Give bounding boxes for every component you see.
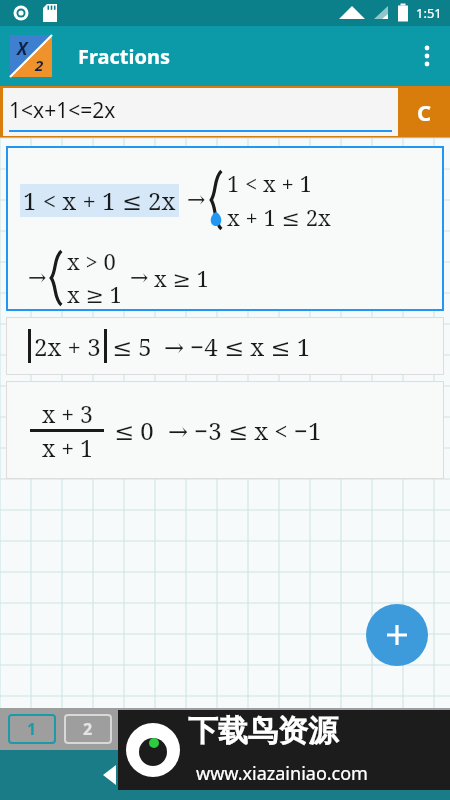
button[interactable]: 1<x+1<=2x [3, 88, 398, 136]
button[interactable]: Add [366, 604, 428, 666]
button[interactable]: 1 [8, 714, 56, 744]
button[interactable]: 3 [120, 714, 168, 744]
staticText: ≤ 0 [114, 414, 154, 447]
staticText: 1<x+1<=2x [9, 96, 116, 125]
staticText: 1 [27, 718, 37, 740]
staticText: 1 < x + 1 [227, 168, 312, 198]
staticText: → [187, 187, 206, 213]
staticText: 1 < x + 1 ≤ 2x [23, 184, 176, 217]
button[interactable]: 2 [64, 714, 112, 744]
staticText: Fractions [78, 43, 171, 70]
staticText: 1:51 [416, 4, 442, 22]
staticText: ≤ 5 [112, 330, 152, 363]
staticText: X [17, 37, 28, 60]
staticText: x + 1 [42, 432, 93, 463]
button[interactable]: 2x + 3 [6, 317, 444, 375]
staticText: 4 [195, 718, 205, 740]
staticText: 5 [251, 718, 261, 740]
staticText: 2 [83, 718, 93, 740]
staticText: 2 [35, 55, 44, 75]
staticText: x ≥ 1 [67, 279, 122, 309]
staticText: → −3 ≤ x < −1 [168, 414, 322, 447]
staticText: x + 3 [42, 398, 93, 429]
button[interactable]: 4 [176, 714, 224, 744]
staticText: 下载鸟资源 [188, 712, 338, 750]
staticText: x ≥ 1 [154, 263, 209, 293]
staticText: → [28, 265, 47, 291]
button[interactable]: 1 < x + 1 ≤ 2x [6, 146, 444, 311]
button[interactable]: Back [90, 755, 130, 795]
button[interactable]: More options [404, 33, 450, 79]
staticText: 2x + 3 [34, 330, 101, 363]
button[interactable]: App icon [10, 35, 52, 77]
staticText: x > 0 [67, 246, 116, 276]
staticText: C [417, 97, 432, 127]
staticText: 3 [139, 718, 149, 740]
staticText: → [130, 265, 149, 291]
staticText: x + 1 ≤ 2x [227, 202, 331, 232]
button[interactable]: x + 3 [6, 381, 444, 479]
staticText: www.xiazainiao.com [196, 761, 368, 786]
button[interactable]: 5 [232, 714, 280, 744]
button[interactable]: C [398, 86, 450, 138]
staticText: → −4 ≤ x ≤ 1 [164, 330, 311, 363]
